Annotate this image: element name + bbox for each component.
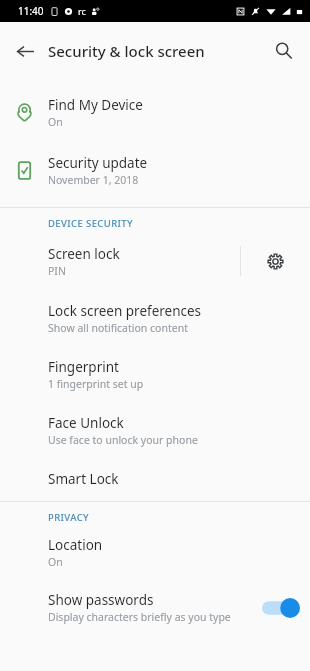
staticText: Face Unlock	[48, 414, 124, 432]
staticText: On	[48, 555, 63, 569]
staticText: Security & lock screen	[48, 41, 205, 61]
staticText: Find My Device	[48, 96, 143, 114]
staticText: PIN	[48, 264, 66, 278]
staticText: Location	[48, 536, 103, 554]
staticText: Show all notification content	[48, 321, 188, 335]
button[interactable]: Screen lock	[0, 238, 240, 284]
button[interactable]: Fingerprint	[0, 354, 310, 394]
button[interactable]: Screen lock settings	[241, 238, 310, 284]
staticText: 1 fingerprint set up	[48, 377, 144, 391]
button[interactable]: Show passwords	[0, 588, 310, 628]
staticText: 11:40	[18, 4, 44, 18]
staticText: Use face to unlock your phone	[48, 433, 198, 447]
staticText: rc	[78, 5, 86, 17]
button[interactable]: Security update	[0, 149, 310, 191]
button[interactable]: Find My Device	[0, 91, 310, 133]
staticText: Screen lock	[48, 245, 120, 263]
staticText: Smart Lock	[48, 470, 119, 488]
staticText: Security update	[48, 154, 148, 172]
button[interactable]: Search	[265, 32, 303, 70]
staticText: November 1, 2018	[48, 173, 139, 187]
staticText: DEVICE SECURITY	[48, 217, 134, 230]
staticText: Display characters briefly as you type	[48, 610, 231, 624]
staticText: Lock screen preferences	[48, 302, 202, 320]
staticText: Show passwords	[48, 591, 154, 609]
staticText: On	[48, 115, 63, 129]
button[interactable]: Lock screen preferences	[0, 298, 310, 338]
button[interactable]: Face Unlock	[0, 410, 310, 450]
staticText: PRIVACY	[48, 511, 90, 524]
staticText: Fingerprint	[48, 358, 119, 376]
button[interactable]: Smart Lock	[0, 466, 310, 492]
button[interactable]: Back	[6, 32, 44, 70]
button[interactable]: Location	[0, 532, 310, 572]
